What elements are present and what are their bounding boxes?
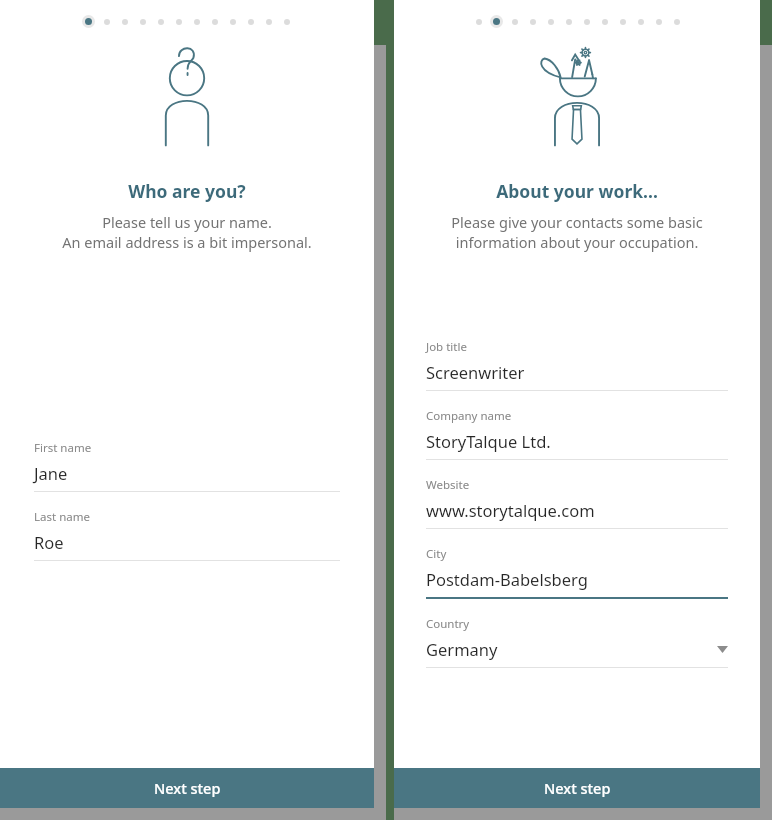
button[interactable]: City (426, 546, 728, 599)
staticText: First name (34, 440, 92, 456)
staticText: Please give your contacts some basic inf… (394, 212, 760, 253)
staticText: Germany (426, 638, 498, 660)
staticText: Country (426, 616, 470, 632)
button[interactable]: Next step (0, 768, 374, 808)
staticText: About your work... (394, 179, 760, 203)
button[interactable]: Last name (34, 509, 340, 561)
button[interactable]: Country (426, 616, 728, 668)
staticText: www.storytalque.com (426, 499, 595, 521)
staticText: Screenwriter (426, 361, 525, 383)
staticText: StoryTalque Ltd. (426, 430, 551, 452)
staticText: Last name (34, 509, 90, 525)
staticText: Please tell us your name. An email addre… (0, 212, 374, 253)
staticText: Who are you? (0, 179, 374, 203)
staticText: Website (426, 477, 470, 493)
staticText: Next step (544, 778, 611, 798)
button[interactable]: Company name (426, 408, 728, 460)
staticText: Job title (426, 339, 467, 355)
button[interactable]: Website (426, 477, 728, 529)
button[interactable]: Next step (394, 768, 760, 808)
button[interactable]: First name (34, 440, 340, 492)
staticText: City (426, 546, 447, 562)
staticText: Next step (154, 778, 221, 798)
staticText: Roe (34, 531, 64, 553)
staticText: Jane (34, 462, 68, 484)
staticText: Postdam-Babelsberg (426, 568, 588, 590)
staticText: Company name (426, 408, 512, 424)
button[interactable]: Job title (426, 339, 728, 391)
